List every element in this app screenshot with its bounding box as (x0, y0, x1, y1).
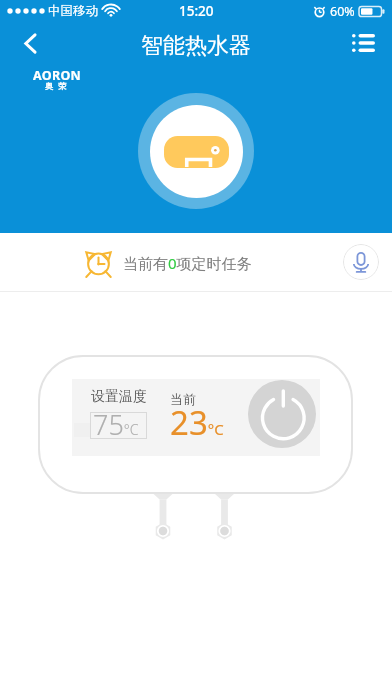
button[interactable]: Set temperature 75 degrees (90, 412, 147, 439)
button[interactable]: Power (248, 380, 316, 448)
staticText: 中国移动 (48, 3, 98, 19)
staticText: 60% (330, 3, 355, 20)
staticText: 23°C (170, 400, 224, 445)
staticText: 75°C (93, 406, 139, 443)
staticText: 当前有0项定时任务 (123, 253, 252, 273)
button[interactable]: Voice control (343, 244, 379, 280)
staticText: AORON (33, 67, 82, 84)
staticText: 设置温度 (91, 388, 147, 406)
staticText: 当前 (170, 391, 196, 407)
staticText: 15:20 (179, 2, 214, 20)
button[interactable]: Menu (346, 22, 392, 64)
button[interactable]: Water heater (138, 93, 254, 209)
staticText: 智能热水器 (141, 32, 251, 60)
staticText: 奥 荣 (45, 80, 67, 91)
button[interactable]: Back (0, 22, 54, 64)
